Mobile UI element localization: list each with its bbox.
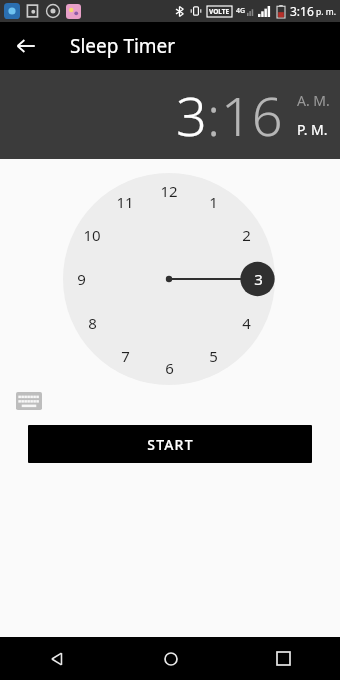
staticText: VOLTE (209, 7, 230, 16)
staticText: 4 (242, 313, 251, 333)
staticText: Sleep Timer (70, 33, 176, 59)
button[interactable]: 3 (176, 78, 207, 152)
button[interactable]: 16 (221, 78, 283, 152)
staticText: : (207, 78, 221, 152)
staticText: 4G (236, 6, 246, 16)
staticText: 3 (254, 269, 263, 289)
button[interactable]: Back (0, 637, 114, 680)
staticText: 8 (88, 313, 97, 333)
staticText: 7 (121, 346, 130, 366)
staticText: 10 (83, 225, 101, 245)
staticText: START (147, 435, 194, 454)
staticText: 12 (160, 181, 178, 201)
staticText: 5 (209, 346, 218, 366)
staticText: 2 (242, 225, 251, 245)
button[interactable]: Home (114, 637, 227, 680)
staticText: p. m. (316, 6, 336, 18)
button[interactable]: 12 (63, 173, 275, 385)
button[interactable]: Recent apps (227, 637, 340, 680)
button[interactable]: P. M. (297, 120, 328, 139)
staticText: 9 (77, 269, 86, 289)
staticText: 3:16 (290, 3, 314, 19)
button[interactable]: Back (6, 26, 46, 66)
button[interactable]: A. M. (297, 91, 330, 110)
button[interactable]: Switch to keyboard input (16, 390, 42, 412)
staticText: 1 (209, 192, 218, 212)
button[interactable]: START (28, 425, 312, 463)
staticText: 11 (116, 192, 134, 212)
staticText: 6 (165, 358, 174, 378)
